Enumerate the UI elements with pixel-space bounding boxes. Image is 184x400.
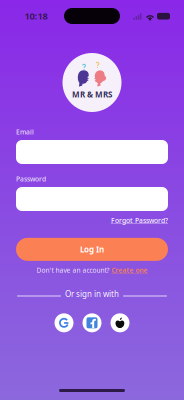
button[interactable]: Password field [16,187,168,211]
staticText: MR & MRS [72,89,112,100]
button[interactable]: Sign in with Google [54,313,73,332]
staticText: Don't have an account? [36,266,109,275]
staticText: Forgot Password? [111,216,168,225]
staticText: Create one [111,266,147,275]
button[interactable]: Sign in with Apple [110,313,129,332]
button[interactable]: Sign in with Facebook [82,313,101,332]
button[interactable]: Create one [111,266,147,275]
button[interactable]: Forgot Password? [111,216,168,225]
staticText: Password [16,175,46,183]
staticText: Log In [80,244,104,255]
staticText: 10:18 [24,10,47,22]
button[interactable]: Log In [16,238,168,261]
button[interactable]: Email field [16,140,168,164]
staticText: Email [16,128,34,136]
staticText: Or sign in with [65,289,119,299]
